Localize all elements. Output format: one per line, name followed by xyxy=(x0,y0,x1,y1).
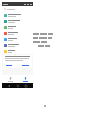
button[interactable] xyxy=(2,30,33,36)
button[interactable] xyxy=(2,12,33,18)
button[interactable] xyxy=(2,24,33,30)
button[interactable]: Updates xyxy=(19,75,31,83)
button[interactable]: Search xyxy=(2,6,33,12)
button[interactable]: Home xyxy=(16,84,20,88)
button[interactable] xyxy=(2,48,33,54)
button[interactable] xyxy=(2,36,33,42)
button[interactable] xyxy=(3,55,32,68)
button[interactable] xyxy=(2,42,33,48)
button[interactable]: Home xyxy=(4,75,16,83)
button[interactable] xyxy=(2,18,33,24)
button[interactable] xyxy=(5,64,13,67)
button[interactable]: Back xyxy=(7,84,11,88)
button[interactable]: Recent apps xyxy=(24,84,28,88)
button[interactable] xyxy=(21,64,30,67)
